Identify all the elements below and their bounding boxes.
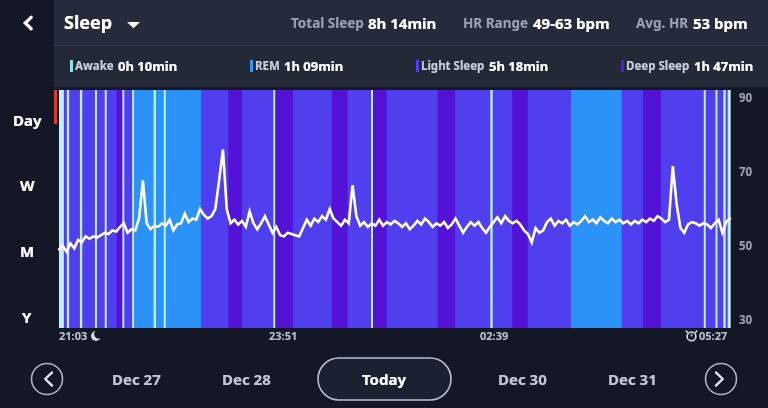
staticText: 53 bpm bbox=[693, 13, 748, 33]
staticText: 05:27 bbox=[699, 328, 728, 343]
staticText: Today bbox=[362, 369, 407, 389]
staticText: W bbox=[20, 175, 35, 195]
staticText: M bbox=[20, 241, 35, 261]
staticText: 02:39 bbox=[480, 328, 509, 343]
staticText: 49-63 bpm bbox=[533, 13, 610, 33]
button[interactable]: Day bbox=[0, 87, 54, 152]
button[interactable]: Y bbox=[0, 284, 54, 350]
button[interactable]: Dec 27 bbox=[98, 360, 175, 398]
button[interactable]: Next day bbox=[704, 362, 738, 396]
staticText: 1h 47min bbox=[694, 57, 754, 75]
staticText: Sleep bbox=[64, 10, 113, 35]
button[interactable]: Today bbox=[318, 358, 451, 400]
staticText: HR Range bbox=[463, 14, 529, 32]
staticText: 1h 09min bbox=[284, 57, 344, 75]
button[interactable]: Back bbox=[0, 0, 54, 45]
staticText: REM bbox=[255, 58, 280, 74]
staticText: Dec 31 bbox=[608, 369, 657, 389]
staticText: Light Sleep bbox=[421, 58, 485, 74]
staticText: 5h 18min bbox=[489, 57, 549, 75]
staticText: Day bbox=[13, 110, 42, 130]
staticText: 50 bbox=[739, 238, 753, 254]
button[interactable]: Dec 30 bbox=[484, 360, 561, 398]
button[interactable]: W bbox=[0, 152, 54, 218]
staticText: Y bbox=[22, 307, 32, 327]
button[interactable]: Sleep bbox=[64, 10, 140, 35]
staticText: 90 bbox=[739, 90, 753, 106]
staticText: 70 bbox=[739, 164, 753, 180]
staticText: 23:51 bbox=[269, 328, 298, 343]
staticText: 8h 14min bbox=[368, 13, 437, 33]
staticText: 30 bbox=[739, 312, 753, 328]
button[interactable]: M bbox=[0, 218, 54, 284]
button[interactable]: Previous day bbox=[30, 362, 64, 396]
staticText: 21:03 bbox=[59, 328, 88, 343]
staticText: Dec 28 bbox=[222, 369, 271, 389]
staticText: Awake bbox=[75, 58, 114, 74]
staticText: 0h 10min bbox=[118, 57, 178, 75]
button[interactable]: Dec 31 bbox=[594, 360, 671, 398]
button[interactable]: Dec 28 bbox=[208, 360, 285, 398]
staticText: Dec 27 bbox=[112, 369, 161, 389]
staticText: Dec 30 bbox=[498, 369, 547, 389]
staticText: Total Sleep bbox=[291, 14, 364, 32]
staticText: Deep Sleep bbox=[626, 58, 690, 74]
staticText: Avg. HR bbox=[636, 14, 689, 32]
